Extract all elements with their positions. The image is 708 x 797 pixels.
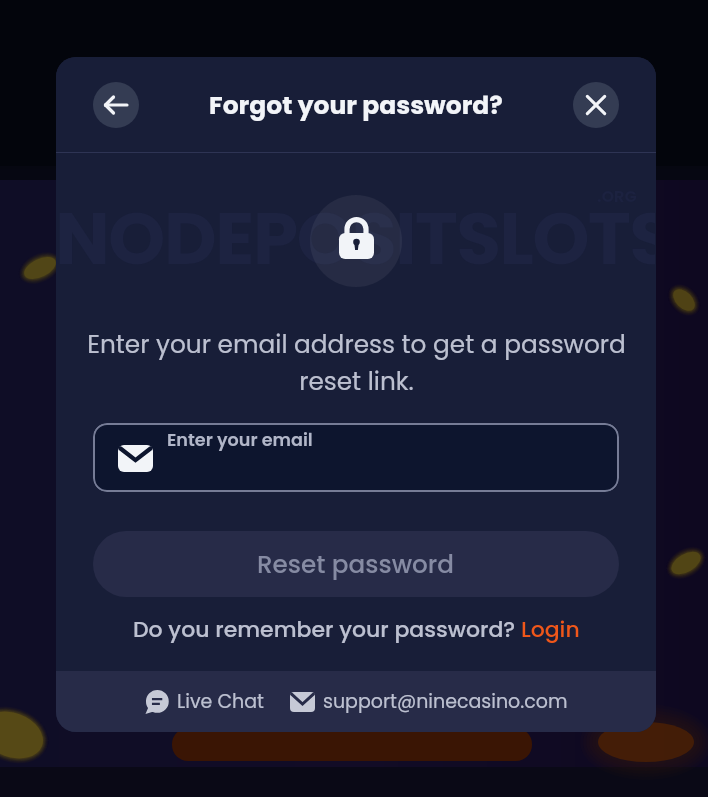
staticText: Enter your email address to get a passwo… [84, 327, 629, 398]
staticText: Enter your email [167, 428, 313, 453]
button[interactable]: Live Chat [145, 688, 264, 715]
staticText: NODEPOSITSLOTS [56, 187, 655, 289]
button[interactable]: Enter your email [93, 423, 619, 492]
staticText: Live Chat [177, 688, 264, 715]
staticText: support@ninecasino.com [323, 688, 568, 715]
staticText: Forgot your password? [209, 88, 503, 123]
staticText: Reset password [257, 547, 455, 582]
button[interactable]: support@ninecasino.com [290, 688, 568, 715]
button[interactable]: Reset password [93, 531, 619, 597]
button[interactable]: Back [93, 82, 139, 128]
staticText: Do you remember your password? Login [133, 614, 580, 645]
button[interactable]: Close [573, 82, 619, 128]
